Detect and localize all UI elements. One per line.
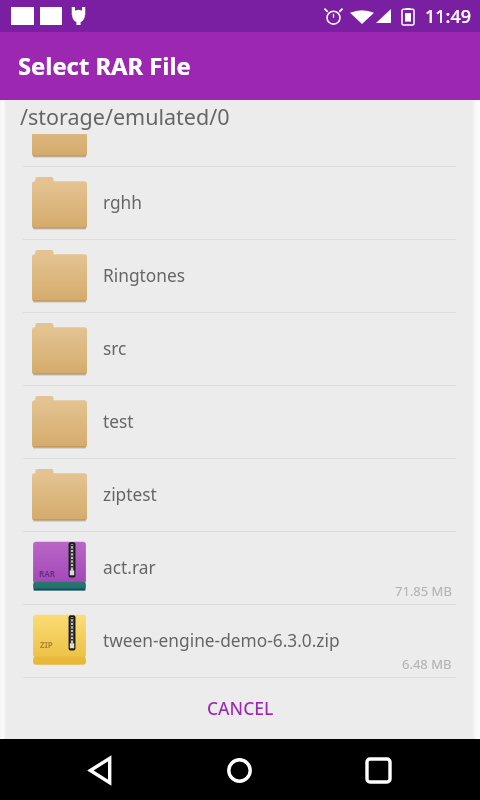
button[interactable]: Recents bbox=[354, 746, 402, 794]
button[interactable]: Home bbox=[215, 746, 263, 794]
button[interactable]: RAR bbox=[0, 531, 480, 604]
button[interactable]: ziptest bbox=[0, 458, 480, 531]
staticText: src bbox=[103, 337, 127, 361]
staticText: Ringtones bbox=[103, 264, 185, 288]
staticText: tween-engine-demo-6.3.0.zip bbox=[103, 629, 340, 653]
button[interactable]: rghh bbox=[0, 166, 480, 239]
staticText: ZIP bbox=[40, 639, 53, 650]
staticText: RAR bbox=[39, 568, 56, 579]
staticText: /storage/emulated/0 bbox=[20, 102, 230, 131]
staticText: test bbox=[103, 410, 134, 434]
button[interactable]: src bbox=[0, 312, 480, 385]
button[interactable]: Ringtones bbox=[0, 239, 480, 312]
button[interactable]: /storage/emulated/0 bbox=[0, 100, 480, 134]
staticText: Select RAR File bbox=[18, 50, 191, 82]
staticText: rghh bbox=[103, 191, 142, 215]
staticText: act.rar bbox=[103, 556, 156, 580]
staticText: 6.48 MB bbox=[402, 655, 452, 673]
button[interactable]: CANCEL bbox=[0, 677, 480, 739]
staticText: 11:49 bbox=[425, 4, 472, 29]
button[interactable]: test bbox=[0, 385, 480, 458]
staticText: ziptest bbox=[103, 483, 157, 507]
staticText: CANCEL bbox=[207, 696, 274, 720]
staticText: 71.85 MB bbox=[395, 582, 452, 600]
button[interactable]: Back bbox=[76, 746, 124, 794]
button[interactable]: ZIP bbox=[0, 604, 480, 677]
